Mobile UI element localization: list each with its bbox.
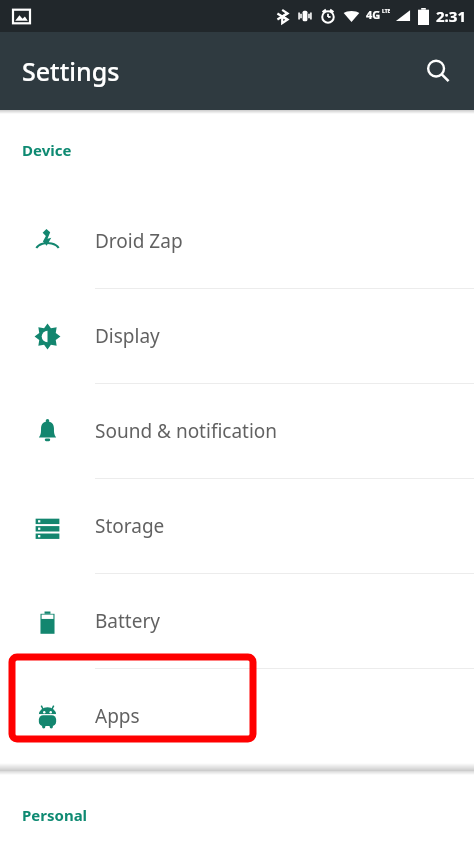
button[interactable]: Apps bbox=[0, 669, 474, 763]
button[interactable]: Display bbox=[0, 289, 474, 384]
staticText: Storage bbox=[95, 513, 165, 539]
button[interactable]: Droid Zap bbox=[0, 194, 474, 289]
staticText: 4G bbox=[366, 7, 381, 22]
staticText: 2:31 bbox=[436, 6, 466, 26]
staticText: Device bbox=[22, 140, 72, 160]
button[interactable]: Sound & notification bbox=[0, 384, 474, 479]
button[interactable]: Search bbox=[414, 47, 462, 95]
staticText: Droid Zap bbox=[95, 228, 183, 254]
staticText: Apps bbox=[95, 703, 140, 729]
staticText: Sound & notification bbox=[95, 418, 278, 444]
staticText: Battery bbox=[95, 608, 160, 634]
staticText: LTE bbox=[382, 8, 391, 15]
button[interactable]: Storage bbox=[0, 479, 474, 574]
staticText: Display bbox=[95, 323, 160, 349]
button[interactable]: Battery bbox=[0, 574, 474, 669]
staticText: Personal bbox=[22, 805, 88, 825]
staticText: Settings bbox=[22, 54, 120, 88]
